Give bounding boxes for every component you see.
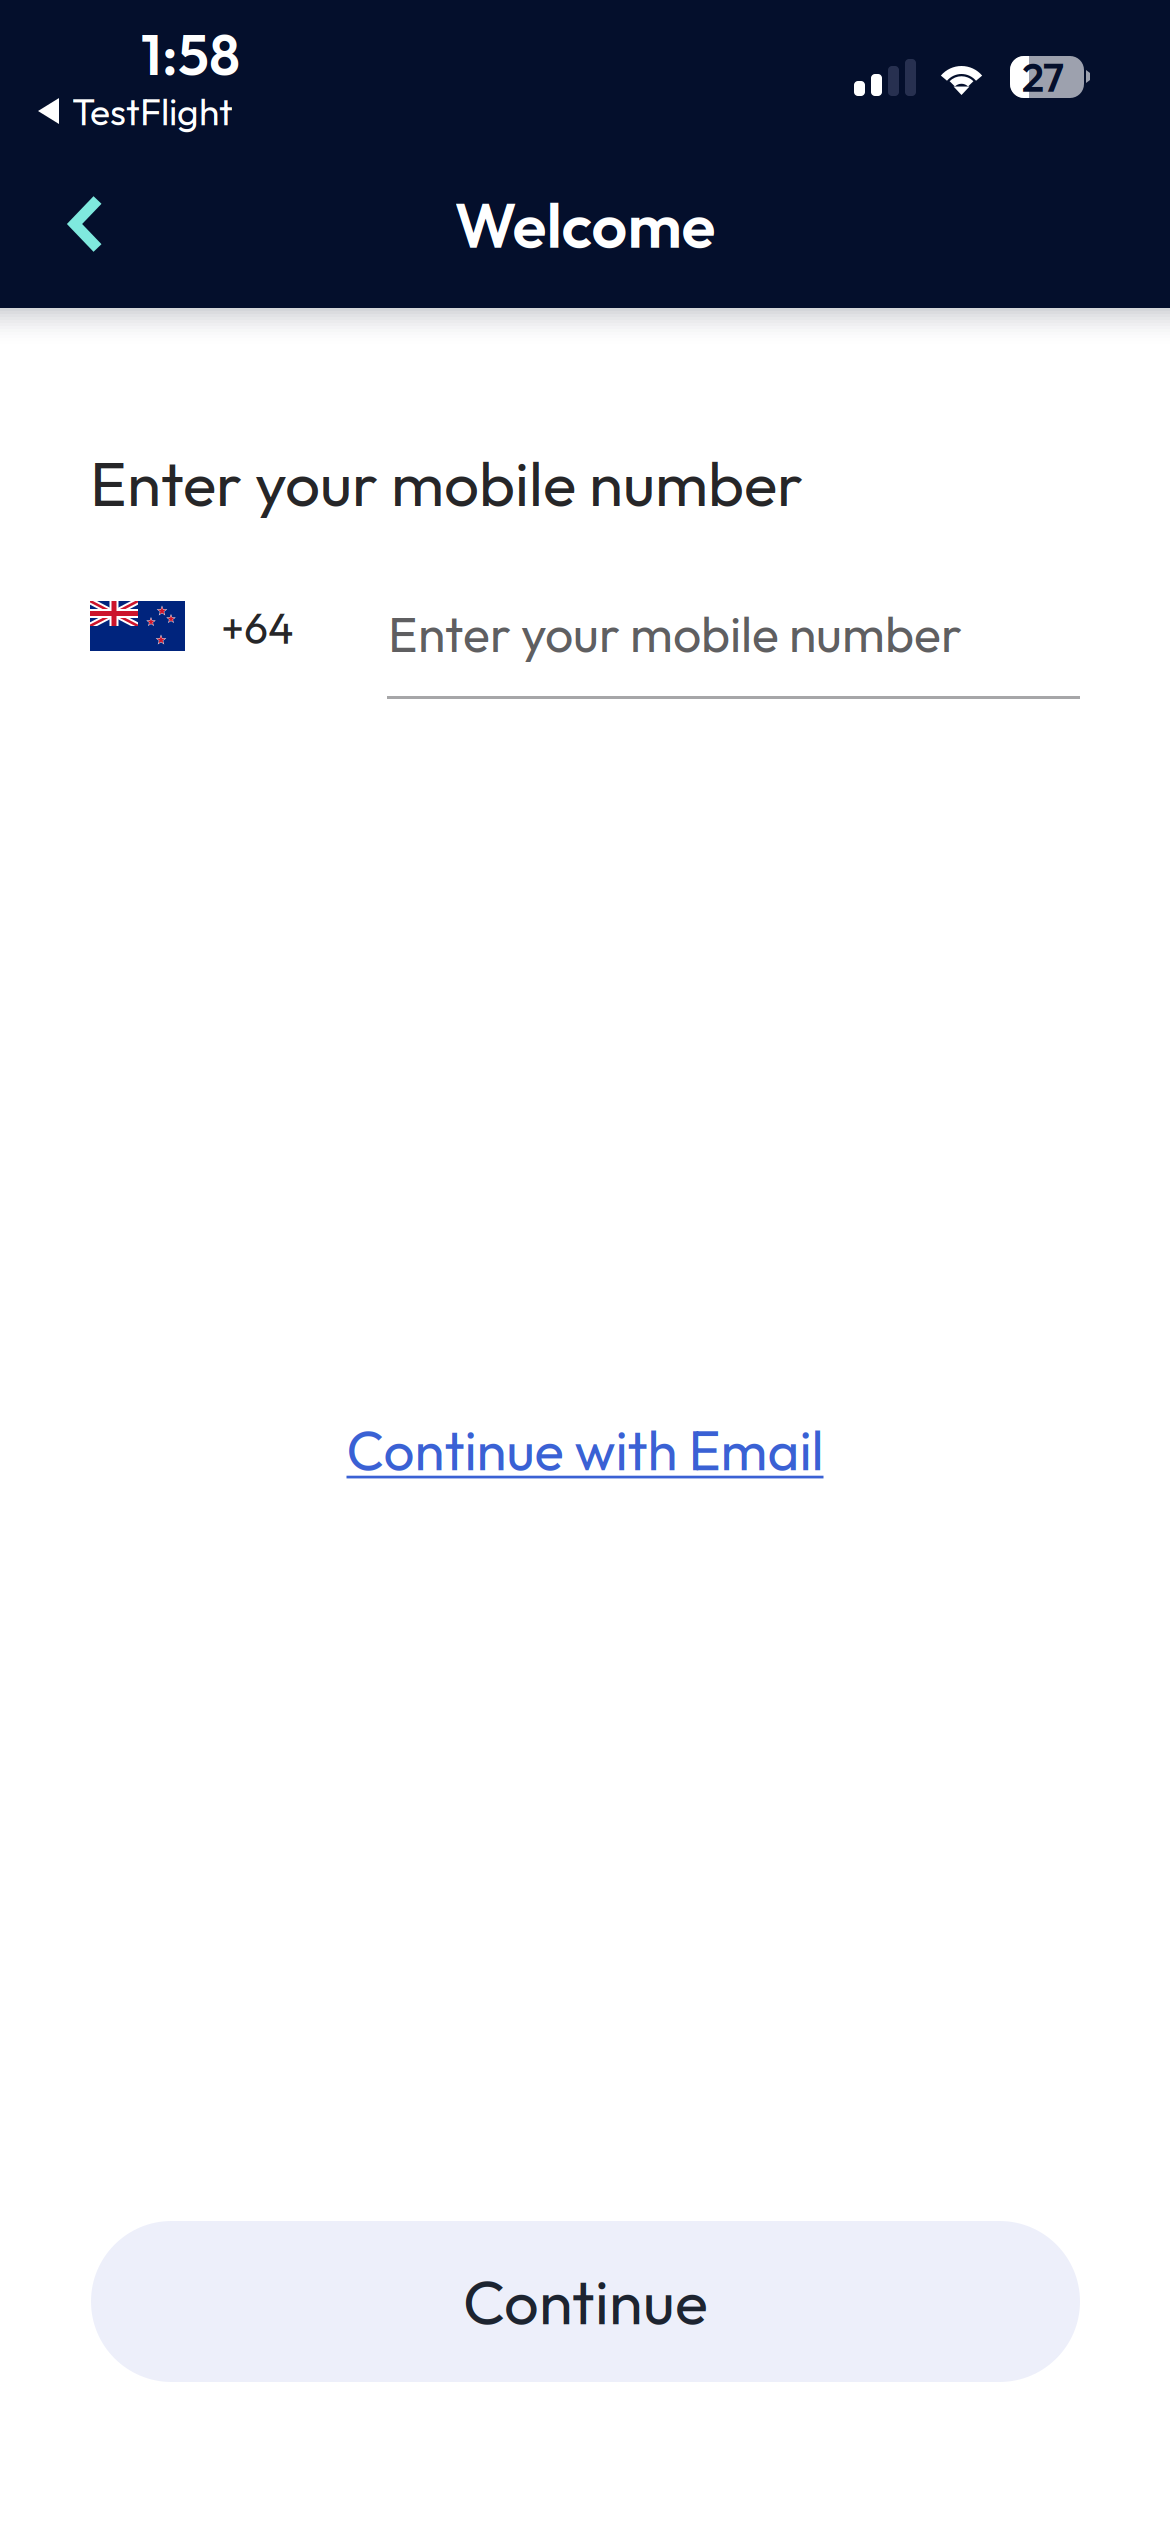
button[interactable]: Continue with Email <box>340 1414 830 1486</box>
staticText: Welcome <box>454 185 715 264</box>
staticText: Enter your mobile number <box>388 602 962 665</box>
staticText: TestFlight <box>72 88 233 135</box>
staticText: 1:58 <box>141 19 240 90</box>
button[interactable]: Back <box>27 165 145 283</box>
staticText: Enter your mobile number <box>90 444 803 522</box>
staticText: Continue <box>463 2263 708 2340</box>
button[interactable]: Continue <box>91 2221 1080 2382</box>
staticText: Continue with Email <box>346 1416 823 1484</box>
staticText: 27 <box>1022 52 1064 102</box>
staticText: +64 <box>221 601 294 655</box>
